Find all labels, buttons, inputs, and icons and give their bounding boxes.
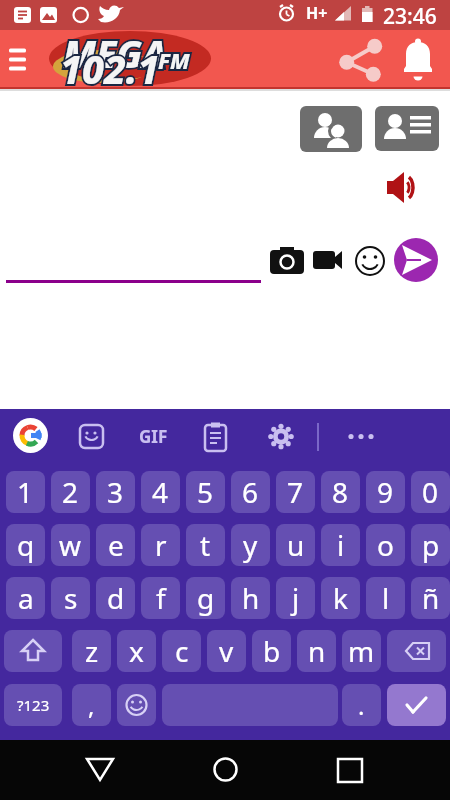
button[interactable]: t	[186, 524, 225, 566]
button[interactable]: g	[186, 577, 225, 619]
button[interactable]: 0	[411, 471, 450, 513]
button[interactable]	[311, 246, 345, 274]
button[interactable]: o	[366, 524, 405, 566]
staticText: 5	[197, 473, 214, 511]
button[interactable]: ñ	[411, 577, 450, 619]
button[interactable]: 9	[366, 471, 405, 513]
button[interactable]: p	[411, 524, 450, 566]
button[interactable]	[200, 420, 230, 452]
button[interactable]	[266, 420, 296, 452]
button[interactable]: w	[51, 524, 90, 566]
button[interactable]: v	[207, 630, 246, 672]
staticText: w	[59, 526, 82, 564]
button[interactable]	[325, 748, 375, 792]
staticText: 23:46	[383, 2, 437, 31]
staticText: 9	[377, 473, 394, 511]
staticText: q	[17, 526, 35, 564]
button[interactable]: i	[321, 524, 360, 566]
button[interactable]: j	[276, 577, 315, 619]
staticText: k	[333, 579, 348, 617]
button[interactable]: 1	[6, 471, 45, 513]
staticText: o	[377, 526, 394, 564]
button[interactable]: n	[297, 630, 336, 672]
button[interactable]: d	[96, 577, 135, 619]
button[interactable]	[162, 684, 338, 726]
button[interactable]: l	[366, 577, 405, 619]
staticText: MEGA	[63, 28, 167, 78]
button[interactable]: .	[342, 684, 381, 726]
button[interactable]: ,	[72, 684, 111, 726]
button[interactable]: e	[96, 524, 135, 566]
button[interactable]: q	[6, 524, 45, 566]
staticText: 0	[422, 473, 439, 511]
staticText: v	[219, 632, 234, 670]
staticText: 1	[17, 473, 34, 511]
button[interactable]	[385, 170, 421, 205]
button[interactable]	[4, 42, 34, 76]
staticText: ?123	[17, 695, 50, 715]
button[interactable]: 2	[51, 471, 90, 513]
staticText: i	[337, 526, 345, 564]
staticText: 102.1	[60, 42, 160, 95]
button[interactable]: r	[141, 524, 180, 566]
staticText: 8	[332, 473, 349, 511]
staticText: 7	[287, 473, 304, 511]
staticText: MEGA	[63, 28, 167, 78]
button[interactable]: GIF	[132, 420, 174, 452]
button[interactable]	[398, 36, 440, 82]
button[interactable]	[375, 106, 439, 151]
button[interactable]	[13, 418, 48, 453]
button[interactable]: b	[252, 630, 291, 672]
button[interactable]	[75, 748, 125, 792]
button[interactable]: y	[231, 524, 270, 566]
button[interactable]: u	[276, 524, 315, 566]
staticText: b	[263, 632, 281, 670]
button[interactable]	[4, 630, 62, 672]
staticText: n	[308, 632, 326, 670]
button[interactable]	[268, 244, 306, 277]
staticText: e	[108, 526, 124, 564]
staticText: 3	[107, 473, 124, 511]
button[interactable]	[387, 684, 446, 726]
staticText: d	[107, 579, 125, 617]
button[interactable]	[334, 34, 388, 86]
button[interactable]	[200, 748, 250, 792]
staticText: GIF	[139, 425, 168, 448]
staticText: z	[85, 632, 99, 670]
button[interactable]: 4	[141, 471, 180, 513]
button[interactable]: z	[72, 630, 111, 672]
staticText: l	[382, 579, 390, 617]
button[interactable]: c	[162, 630, 201, 672]
staticText: ,	[88, 689, 95, 722]
button[interactable]	[117, 684, 156, 726]
staticText: p	[422, 526, 440, 564]
staticText: r	[155, 526, 167, 564]
button[interactable]: m	[342, 630, 381, 672]
button[interactable]: a	[6, 577, 45, 619]
button[interactable]: 3	[96, 471, 135, 513]
button[interactable]: k	[321, 577, 360, 619]
button[interactable]: x	[117, 630, 156, 672]
button[interactable]	[394, 238, 438, 282]
staticText: t	[200, 526, 211, 564]
button[interactable]: ?123	[4, 684, 62, 726]
button[interactable]: 5	[186, 471, 225, 513]
staticText: .	[358, 689, 365, 722]
button[interactable]: 6	[231, 471, 270, 513]
button[interactable]	[300, 106, 362, 152]
staticText: h	[242, 579, 260, 617]
button[interactable]	[76, 420, 106, 452]
button[interactable]: 8	[321, 471, 360, 513]
button[interactable]: h	[231, 577, 270, 619]
button[interactable]: s	[51, 577, 90, 619]
button[interactable]	[354, 245, 386, 277]
button[interactable]: 7	[276, 471, 315, 513]
staticText: f	[156, 579, 166, 617]
staticText: 4	[152, 473, 169, 511]
staticText: 2	[62, 473, 79, 511]
button[interactable]: f	[141, 577, 180, 619]
staticText: 6	[242, 473, 259, 511]
button[interactable]	[344, 420, 378, 452]
staticText: x	[129, 632, 144, 670]
button[interactable]	[387, 630, 446, 672]
